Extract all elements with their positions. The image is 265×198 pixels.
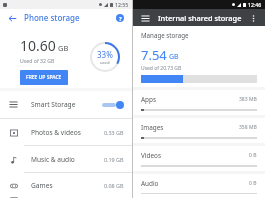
staticText: 383 MB bbox=[239, 96, 257, 103]
staticText: Internal shared storage bbox=[158, 13, 242, 23]
button[interactable]: Smart Storage bbox=[0, 91, 132, 118]
button[interactable]: Help bbox=[114, 12, 126, 24]
staticText: 358 MB bbox=[239, 124, 257, 131]
staticText: Images bbox=[141, 123, 164, 132]
staticText: Used of 20.73 GB bbox=[141, 65, 182, 72]
button[interactable]: FREE UP SPACE bbox=[20, 70, 68, 85]
staticText: 7.54 bbox=[141, 46, 167, 64]
staticText: Manage storage bbox=[141, 31, 189, 39]
button[interactable]: Music & audio bbox=[0, 146, 132, 173]
staticText: 0.33 GB bbox=[104, 129, 124, 136]
staticText: GB bbox=[58, 43, 69, 53]
staticText: 33% bbox=[97, 49, 113, 60]
staticText: 0 B bbox=[249, 152, 257, 159]
button[interactable]: Manage storage bbox=[133, 26, 265, 43]
button[interactable]: More options bbox=[247, 12, 259, 24]
button[interactable]: Open navigation drawer bbox=[139, 12, 151, 24]
staticText: Phone storage bbox=[24, 12, 80, 23]
staticText: Videos bbox=[141, 151, 161, 160]
staticText: GB bbox=[169, 52, 179, 62]
staticText: Smart Storage bbox=[31, 100, 76, 109]
staticText: 0.08 GB bbox=[104, 182, 124, 189]
staticText: Apps bbox=[141, 95, 157, 104]
staticText: FREE UP SPACE bbox=[26, 74, 62, 81]
staticText: ? bbox=[119, 15, 122, 22]
staticText: Photos & videos bbox=[31, 128, 81, 137]
staticText: used bbox=[100, 60, 110, 66]
button[interactable]: Videos bbox=[133, 146, 265, 171]
staticText: 0.19 GB bbox=[104, 156, 124, 163]
staticText: Games bbox=[31, 181, 53, 190]
button[interactable]: Apps bbox=[133, 90, 265, 115]
button[interactable]: Images bbox=[133, 118, 265, 143]
staticText: 10.60 bbox=[20, 36, 56, 55]
staticText: 0 B bbox=[249, 180, 257, 187]
button[interactable]: Photos & videos bbox=[0, 119, 132, 146]
staticText: 12:55 bbox=[115, 1, 129, 8]
staticText: 12:46 bbox=[248, 1, 262, 8]
staticText: Music & audio bbox=[31, 155, 75, 164]
button[interactable]: Games bbox=[0, 173, 132, 198]
staticText: Used of 32 GB bbox=[20, 57, 55, 64]
button[interactable]: Back bbox=[6, 12, 18, 24]
button[interactable]: Audio bbox=[133, 174, 265, 198]
staticText: Audio bbox=[141, 179, 159, 188]
